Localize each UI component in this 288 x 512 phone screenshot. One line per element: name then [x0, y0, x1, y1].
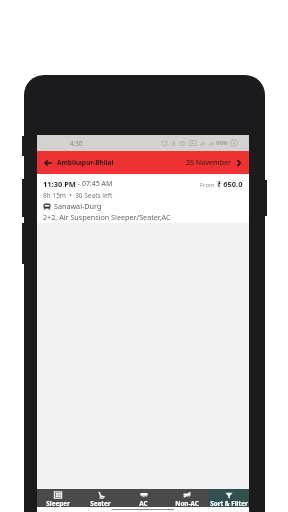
staticText: From	[200, 181, 217, 189]
button[interactable]: Sleeper	[37, 489, 79, 507]
staticText: 2+2, Air Suspension Sleeper/Seater,AC	[43, 212, 171, 222]
staticText: Sort & Filter	[210, 499, 248, 508]
staticText: AC	[139, 499, 148, 508]
button[interactable]: Non-AC	[165, 489, 208, 507]
staticText: Non-AC	[175, 499, 199, 508]
staticText: Sleeper	[46, 499, 70, 508]
staticText: Sanawal-Durg	[54, 201, 102, 211]
button[interactable]: Seater	[79, 489, 122, 507]
button[interactable]: Sort & Filter	[208, 489, 249, 507]
staticText: 8h 15m • 30 Seats left	[43, 191, 113, 200]
button[interactable]: 11:30 PM	[37, 174, 249, 223]
staticText: Seater	[90, 499, 111, 508]
staticText: - 07:45 AM	[76, 179, 113, 189]
button[interactable]: AC	[122, 489, 165, 507]
staticText: Ambikapur-Bhilai	[57, 158, 114, 167]
staticText: 96%	[216, 139, 228, 147]
button[interactable]: Back	[42, 157, 53, 168]
staticText: 4:30	[70, 139, 83, 147]
staticText: ₹ 650.0	[217, 179, 243, 189]
staticText: 11:30 PM	[43, 179, 76, 189]
staticText: 25 November	[186, 158, 232, 168]
button[interactable]: 25 November	[186, 158, 243, 168]
